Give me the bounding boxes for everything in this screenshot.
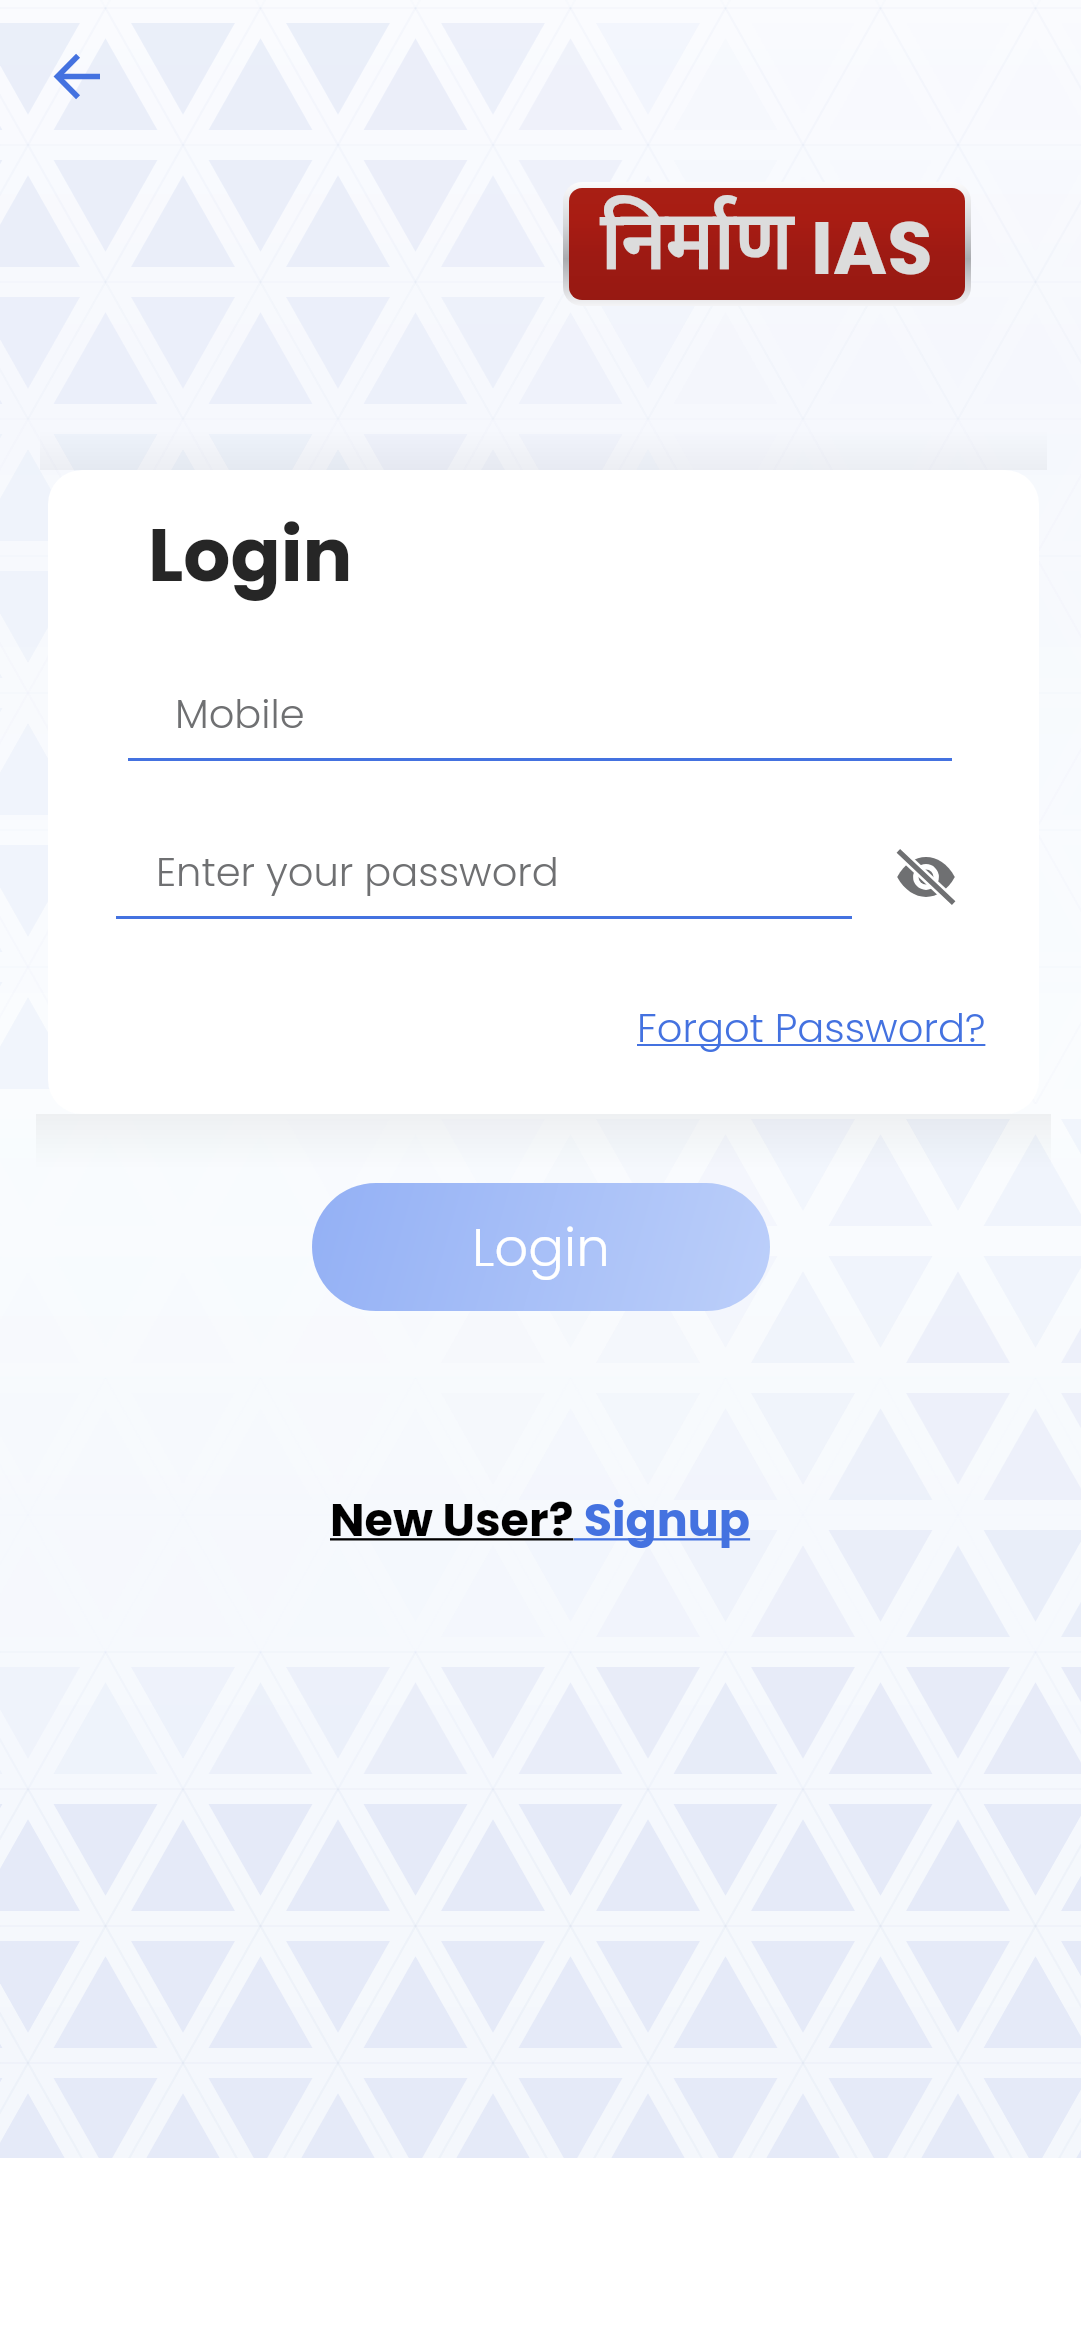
button[interactable]: Show password [871, 822, 981, 932]
staticText: Enter your password [156, 844, 559, 900]
button[interactable]: Forgot Password? [637, 1000, 986, 1056]
staticText: Login [148, 503, 353, 607]
staticText: Login [472, 1210, 610, 1284]
button[interactable]: New User? [330, 1488, 751, 1552]
button[interactable]: Login [312, 1183, 770, 1311]
staticText: निर्माण [601, 196, 793, 300]
staticText: IAS [811, 196, 933, 300]
button[interactable]: Back [45, 43, 111, 109]
staticText: New User? [330, 1488, 574, 1552]
staticText: Mobile [175, 686, 305, 742]
staticText: Forgot Password? [637, 1000, 986, 1056]
staticText: Signup [574, 1488, 751, 1552]
